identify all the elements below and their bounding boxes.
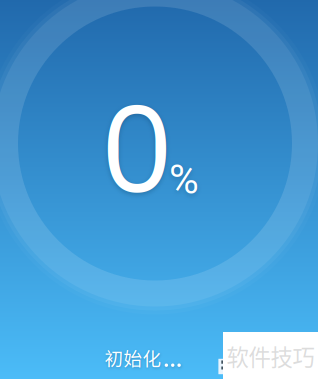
- staticText: 软件技巧: [227, 340, 315, 372]
- staticText: 初始化: [104, 344, 161, 371]
- staticText: %: [169, 156, 199, 203]
- staticText: 0: [100, 67, 173, 225]
